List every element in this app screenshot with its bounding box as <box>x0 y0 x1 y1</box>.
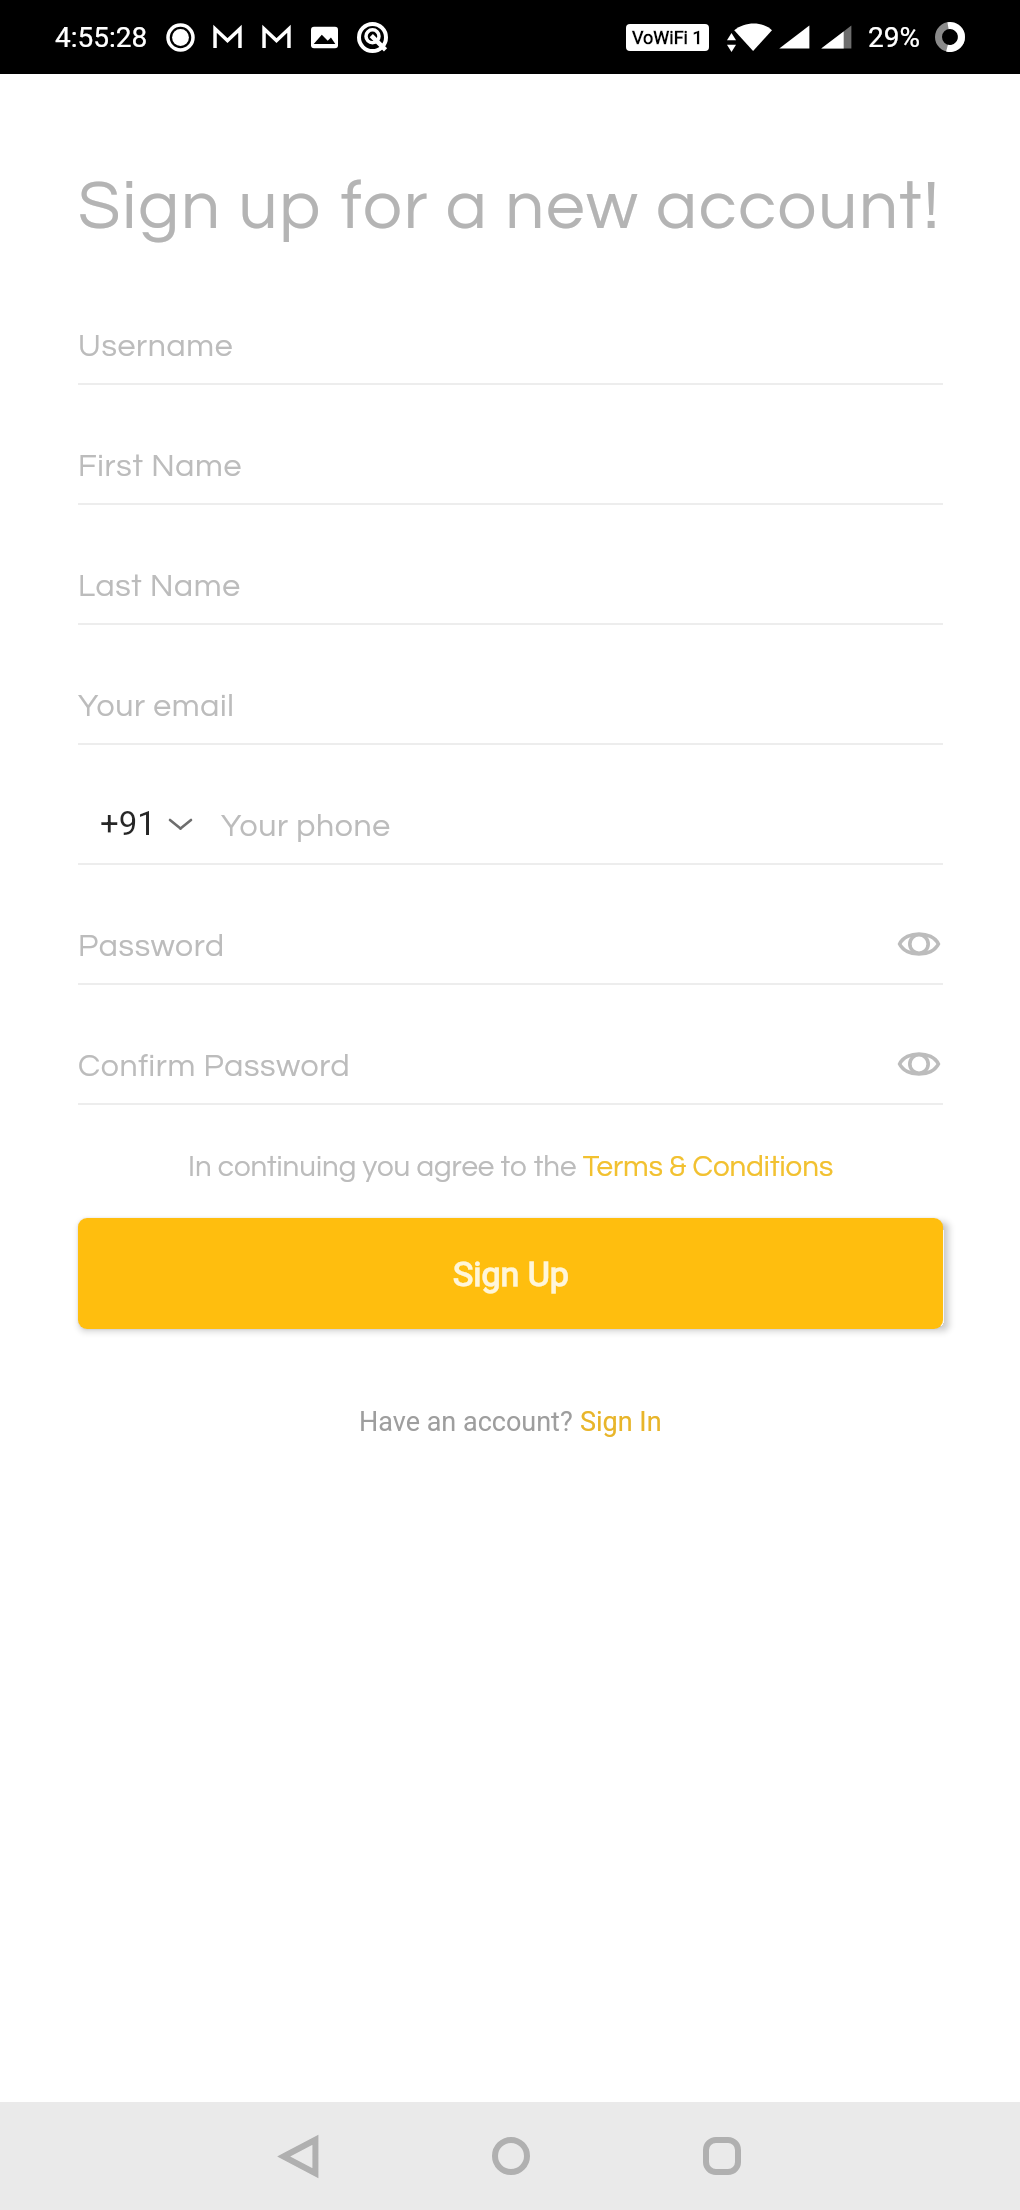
staticText: Your email <box>78 690 235 723</box>
staticText: Password <box>78 930 225 963</box>
staticText: In continuing you agree to the Terms & C… <box>78 1152 943 1182</box>
staticText: +91 <box>100 804 156 843</box>
button[interactable]: Username <box>78 265 943 385</box>
button[interactable]: Back <box>246 2103 352 2209</box>
button[interactable]: Recents <box>669 2103 775 2209</box>
staticText: 4:55:28 <box>55 21 148 54</box>
staticText: Sign up for a new account! <box>78 171 941 242</box>
button[interactable]: Last Name <box>78 505 943 625</box>
staticText: 29% <box>868 21 920 54</box>
staticText: Username <box>78 330 234 363</box>
button[interactable]: +91 <box>78 804 221 843</box>
staticText: VoWiFi 1 <box>632 27 703 48</box>
button[interactable]: Password <box>78 865 943 985</box>
button[interactable]: Sign Up <box>78 1218 943 1329</box>
button[interactable]: Confirm Password <box>78 985 943 1105</box>
staticText: Have an account? <box>359 1406 580 1438</box>
button[interactable]: Show password <box>895 1038 943 1090</box>
staticText: Sign Up <box>453 1254 569 1294</box>
button[interactable]: Home <box>458 2103 564 2209</box>
staticText: Your phone <box>221 810 391 843</box>
button[interactable]: +91 <box>78 745 943 865</box>
button[interactable]: Your email <box>78 625 943 745</box>
staticText: First Name <box>78 450 243 483</box>
staticText: Confirm Password <box>78 1050 351 1083</box>
button[interactable]: First Name <box>78 385 943 505</box>
button[interactable]: Sign In <box>580 1406 662 1438</box>
button[interactable]: Show password <box>895 918 943 970</box>
staticText: Last Name <box>78 570 241 603</box>
